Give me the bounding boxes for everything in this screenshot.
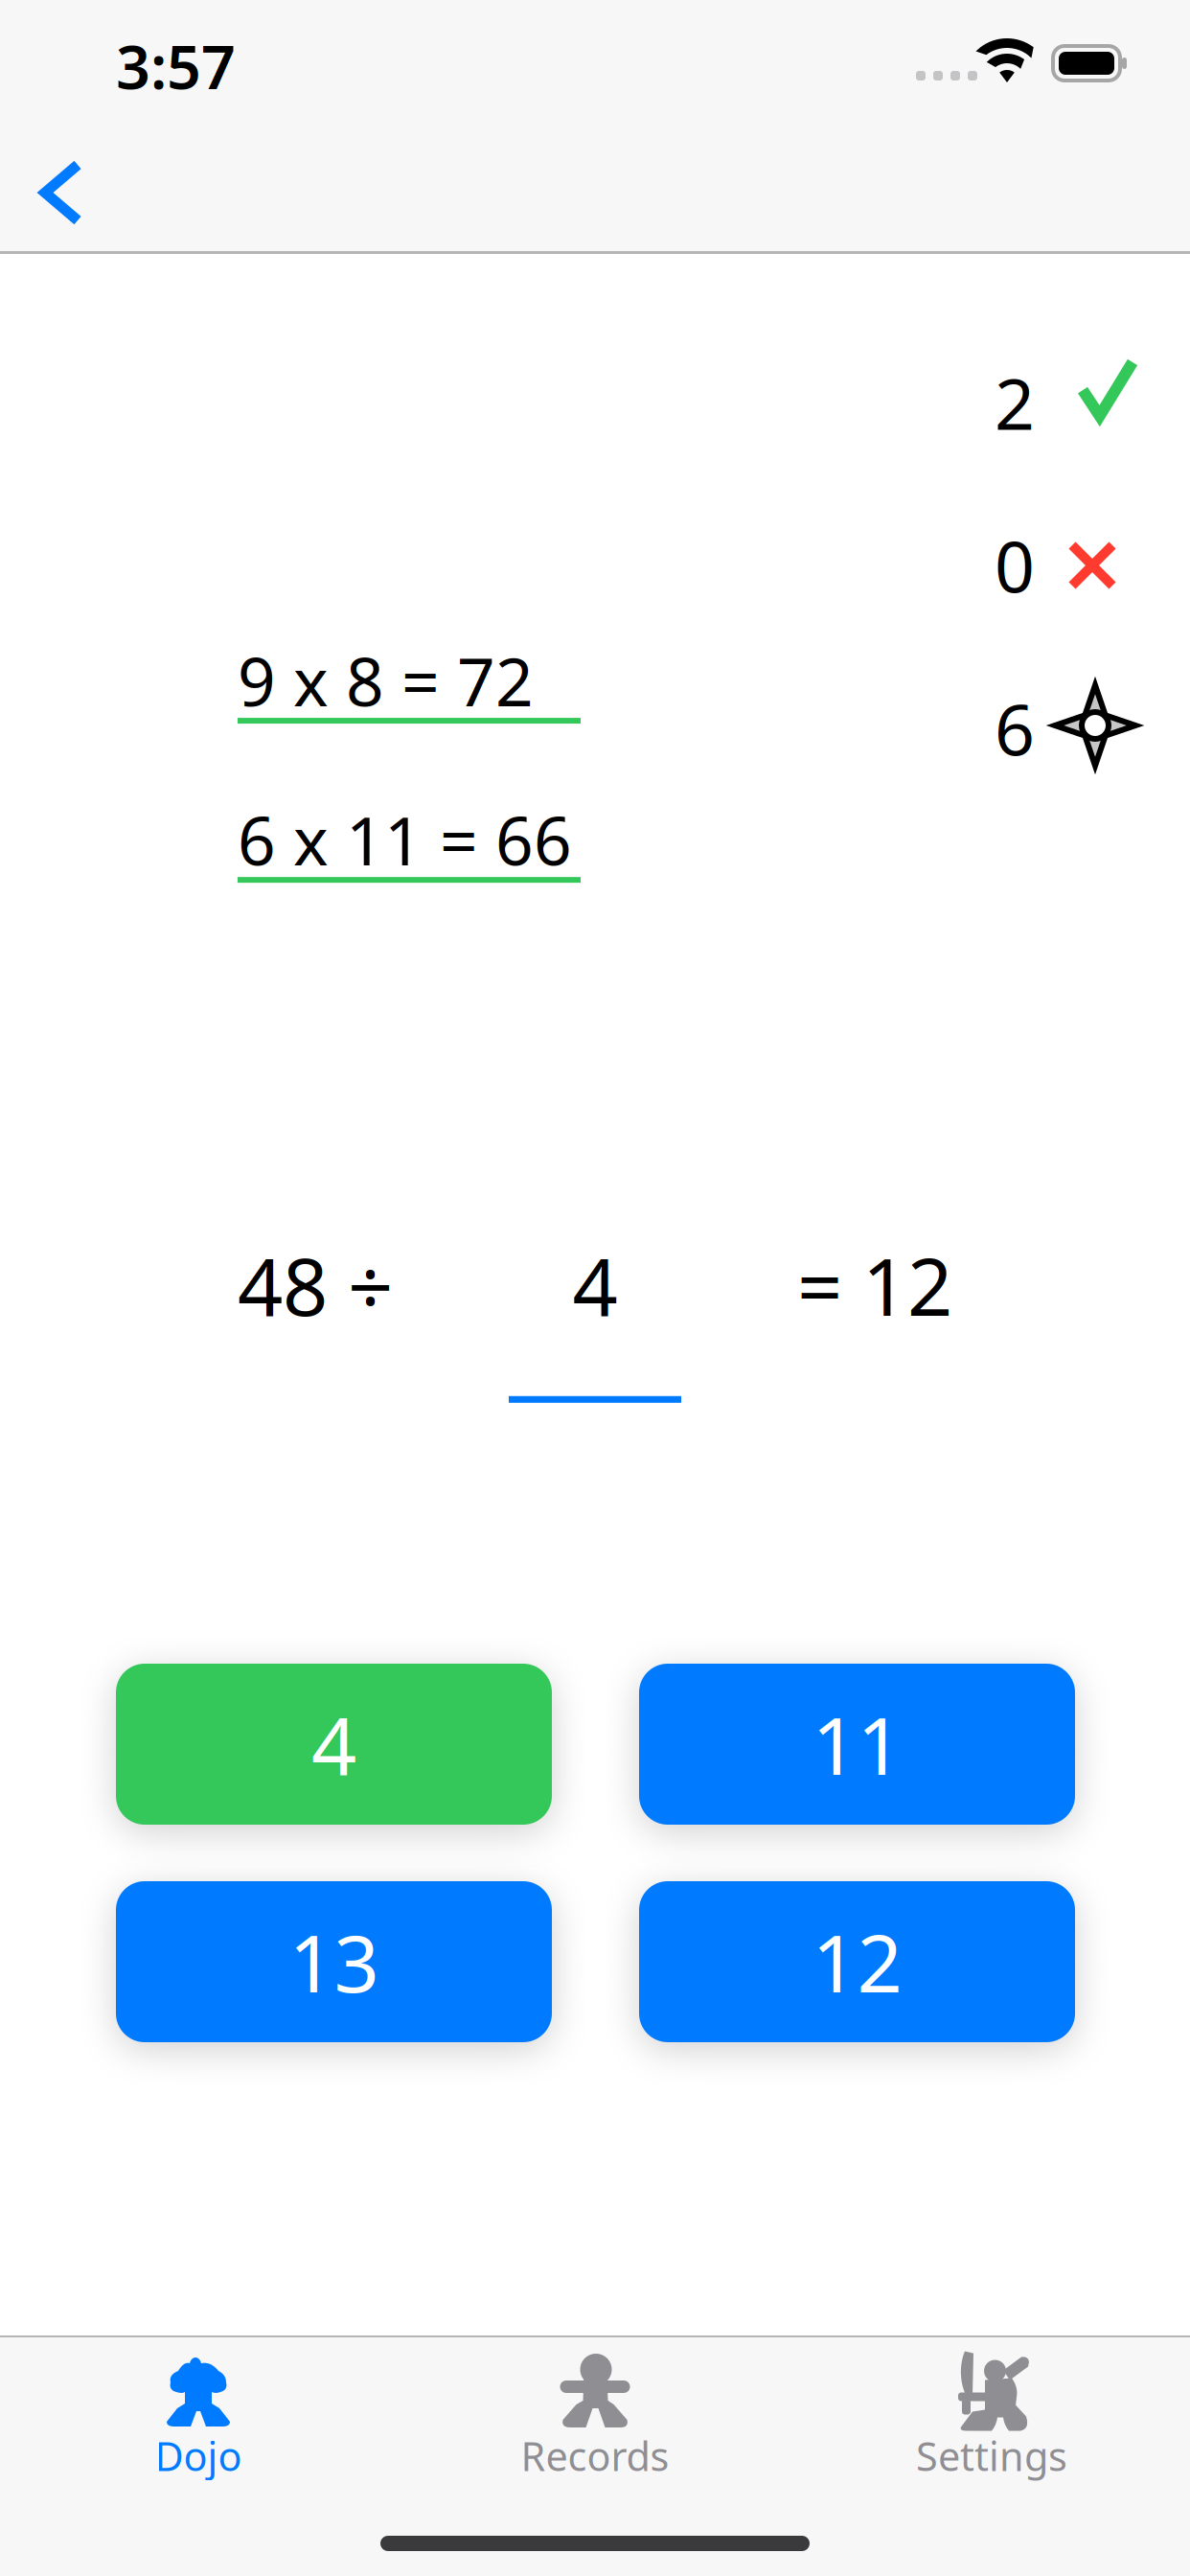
staticText: 12 <box>812 1909 902 2014</box>
staticText: 6 x 11 = 66 <box>238 796 572 884</box>
staticText: Settings <box>916 2429 1067 2482</box>
button[interactable]: Records <box>397 2353 793 2498</box>
staticText: Records <box>521 2429 669 2482</box>
staticText: 9 x 8 = 72 <box>238 636 534 725</box>
staticText: 11 <box>812 1692 902 1797</box>
staticText: Dojo <box>155 2429 242 2482</box>
button[interactable]: 11 <box>639 1664 1075 1825</box>
staticText: 48 ÷ <box>238 1232 393 1338</box>
button[interactable]: Dojo <box>0 2353 397 2498</box>
button[interactable]: 12 <box>639 1881 1075 2042</box>
staticText: 4 <box>572 1232 618 1338</box>
staticText: 6 <box>995 682 1035 775</box>
button[interactable]: 4 <box>116 1664 552 1825</box>
staticText: 2 <box>995 356 1035 449</box>
staticText: 4 <box>311 1692 356 1797</box>
staticText: 0 <box>995 519 1035 612</box>
button[interactable]: 13 <box>116 1881 552 2042</box>
staticText: 3:57 <box>116 26 236 106</box>
button[interactable]: Back <box>18 149 104 236</box>
staticText: = 12 <box>797 1232 952 1338</box>
staticText: 13 <box>289 1909 379 2014</box>
button[interactable]: Settings <box>793 2353 1190 2498</box>
